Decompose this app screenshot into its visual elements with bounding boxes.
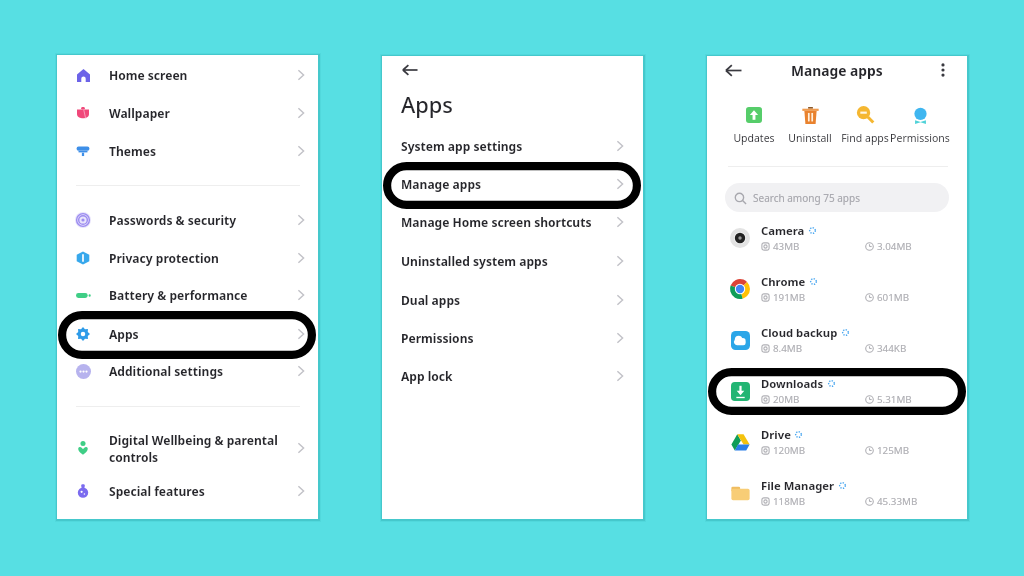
button[interactable]: Apps — [57, 315, 318, 353]
staticText: Uninstall — [777, 131, 843, 145]
staticText: Find apps — [832, 131, 898, 145]
button[interactable]: Cloud backup — [707, 318, 967, 362]
button[interactable]: Drive — [707, 420, 967, 464]
staticText: Manage Home screen shortcuts — [401, 214, 592, 230]
staticText: 344KB — [877, 342, 907, 355]
button[interactable]: Camera — [707, 216, 967, 260]
staticText: Cloud backup — [761, 325, 838, 340]
button[interactable]: Additional settings — [57, 352, 318, 390]
staticText: Updates — [721, 131, 787, 145]
button[interactable]: Themes — [57, 132, 318, 170]
staticText: Dual apps — [401, 292, 461, 308]
staticText: File Manager — [761, 478, 835, 493]
staticText: 43MB — [773, 240, 800, 253]
staticText: 20MB — [773, 393, 800, 406]
staticText: Apps — [401, 90, 453, 120]
button[interactable]: Wallpaper — [57, 94, 318, 132]
staticText: Chrome — [761, 274, 806, 289]
button[interactable]: Permissions — [887, 105, 953, 145]
button[interactable]: Back — [721, 58, 745, 82]
staticText: Home screen — [109, 67, 188, 83]
button[interactable]: Home screen — [57, 56, 318, 94]
button[interactable]: Permissions — [382, 319, 643, 357]
button[interactable]: More options — [932, 59, 954, 81]
button[interactable]: Dual apps — [382, 281, 643, 319]
button[interactable]: File Manager — [707, 471, 967, 515]
button[interactable]: Downloads — [707, 369, 967, 413]
button[interactable]: Special features — [57, 472, 318, 510]
staticText: 3.04MB — [877, 240, 912, 253]
staticText: 45.33MB — [877, 495, 918, 508]
button[interactable]: Find apps — [832, 105, 898, 145]
staticText: controls — [109, 449, 159, 465]
staticText: System app settings — [401, 138, 523, 154]
staticText: Search among 75 apps — [753, 191, 860, 205]
button[interactable]: Manage apps — [382, 165, 643, 203]
staticText: Special features — [109, 483, 205, 499]
staticText: 120MB — [773, 444, 806, 457]
staticText: Downloads — [761, 376, 824, 391]
button[interactable]: App lock — [382, 357, 643, 395]
staticText: Digital Wellbeing & parental — [109, 432, 278, 448]
staticText: 5.31MB — [877, 393, 912, 406]
button[interactable]: Back — [398, 58, 422, 82]
staticText: Permissions — [887, 131, 953, 145]
staticText: Apps — [109, 326, 139, 342]
staticText: Uninstalled system apps — [401, 253, 548, 269]
button[interactable]: Privacy protection — [57, 239, 318, 277]
staticText: Manage apps — [401, 176, 482, 192]
staticText: Wallpaper — [109, 105, 170, 121]
button[interactable]: Uninstalled system apps — [382, 242, 643, 280]
staticText: Manage apps — [791, 61, 883, 80]
staticText: Permissions — [401, 330, 474, 346]
staticText: Camera — [761, 223, 805, 238]
button[interactable]: Search among 75 apps — [725, 183, 949, 212]
button[interactable]: Updates — [721, 105, 787, 145]
staticText: 125MB — [877, 444, 910, 457]
staticText: 8.4MB — [773, 342, 803, 355]
staticText: Themes — [109, 143, 156, 159]
button[interactable]: Battery & performance — [57, 276, 318, 314]
button[interactable]: System app settings — [382, 127, 643, 165]
staticText: 191MB — [773, 291, 806, 304]
staticText: 601MB — [877, 291, 910, 304]
button[interactable]: Chrome — [707, 267, 967, 311]
button[interactable]: Manage Home screen shortcuts — [382, 203, 643, 241]
staticText: Battery & performance — [109, 287, 248, 303]
staticText: Passwords & security — [109, 212, 237, 228]
staticText: 118MB — [773, 495, 806, 508]
staticText: Drive — [761, 427, 791, 442]
staticText: App lock — [401, 368, 453, 384]
staticText: Additional settings — [109, 363, 224, 379]
button[interactable]: Uninstall — [777, 105, 843, 145]
button[interactable]: Digital Wellbeing & parental — [57, 429, 318, 467]
staticText: Privacy protection — [109, 250, 219, 266]
button[interactable]: Passwords & security — [57, 201, 318, 239]
